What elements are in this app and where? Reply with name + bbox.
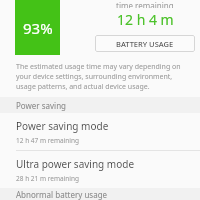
button[interactable]: Power saving mode <box>0 113 200 150</box>
staticText: 93% <box>23 18 53 38</box>
staticText: BATTERY USAGE <box>116 39 174 49</box>
staticText: Power saving <box>16 100 67 111</box>
staticText: 12 h 47 m remaining <box>16 136 80 145</box>
staticText: Ultra power saving mode <box>16 157 135 171</box>
button[interactable]: Ultra power saving mode <box>0 151 200 188</box>
staticText: time remaining <box>116 0 174 8</box>
staticText: Abnormal battery usage <box>16 189 108 200</box>
button[interactable]: BATTERY USAGE <box>95 35 195 52</box>
staticText: The estimated usage time may vary depend… <box>16 62 188 92</box>
staticText: Power saving mode <box>16 119 109 133</box>
staticText: 28 h 21 m remaining <box>16 174 80 183</box>
staticText: 12 h 4 m <box>117 10 174 29</box>
